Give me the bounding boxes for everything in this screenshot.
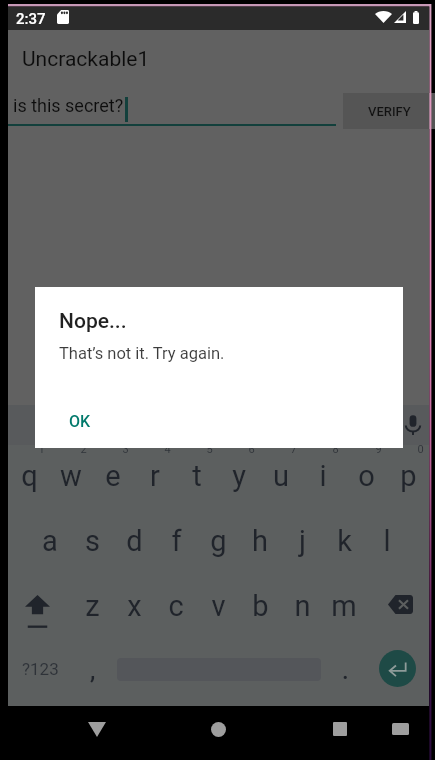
staticText: 2 — [80, 443, 87, 456]
button[interactable]: s — [71, 515, 113, 567]
button[interactable]: r — [134, 450, 176, 502]
button[interactable]: m — [323, 580, 365, 632]
staticText: 9 — [375, 443, 382, 456]
staticText: . — [342, 657, 349, 685]
staticText: i — [319, 459, 327, 493]
staticText: d — [126, 524, 143, 558]
button[interactable]: Recent apps — [320, 709, 360, 749]
staticText: 0 — [417, 443, 424, 456]
staticText: l — [383, 524, 391, 558]
button[interactable]: p — [387, 450, 429, 502]
button[interactable]: o — [345, 450, 387, 502]
button[interactable]: i — [302, 450, 344, 502]
button[interactable]: OK — [58, 405, 102, 437]
staticText: v — [211, 589, 226, 623]
button[interactable]: Switch keyboard — [383, 712, 417, 746]
other: Voice input — [403, 413, 423, 436]
button[interactable]: Home — [198, 709, 238, 749]
button[interactable]: Shift — [25, 595, 50, 628]
button[interactable]: l — [366, 515, 408, 567]
staticText: q — [21, 459, 38, 493]
button[interactable]: v — [197, 580, 239, 632]
staticText: ?123 — [22, 659, 59, 679]
button[interactable]: c — [155, 580, 197, 632]
button[interactable]: j — [281, 515, 323, 567]
staticText: y — [232, 459, 246, 493]
button[interactable]: ?123 — [14, 649, 66, 689]
button[interactable]: k — [323, 515, 365, 567]
staticText: o — [358, 459, 375, 493]
staticText: , — [90, 657, 96, 685]
staticText: f — [171, 524, 182, 558]
staticText: j — [299, 524, 306, 558]
button[interactable]: u — [260, 450, 302, 502]
button[interactable]: Backspace — [388, 595, 413, 614]
staticText: c — [168, 589, 184, 623]
button[interactable]: f — [155, 515, 197, 567]
staticText: 8 — [332, 443, 339, 456]
button[interactable]: x — [113, 580, 155, 632]
button[interactable]: n — [281, 580, 323, 632]
staticText: That’s not it. Try again. — [59, 344, 225, 363]
button[interactable]: . — [323, 651, 368, 691]
button[interactable]: t — [176, 450, 218, 502]
staticText: u — [273, 459, 289, 493]
staticText: Nope... — [59, 309, 127, 334]
button[interactable]: y — [218, 450, 260, 502]
staticText: s — [85, 524, 100, 558]
button[interactable]: b — [239, 580, 281, 632]
staticText: h — [252, 524, 268, 558]
staticText: 5 — [206, 443, 213, 456]
staticText: w — [60, 459, 82, 493]
staticText: 3 — [122, 443, 129, 456]
staticText: t — [192, 459, 202, 493]
button[interactable]: g — [197, 515, 239, 567]
staticText: r — [150, 459, 160, 493]
staticText: 6 — [248, 443, 255, 456]
button[interactable]: h — [239, 515, 281, 567]
button[interactable]: VERIFY — [343, 93, 435, 129]
staticText: Uncrackable1 — [22, 47, 150, 72]
staticText: n — [294, 589, 311, 623]
staticText: OK — [69, 412, 91, 431]
staticText: x — [127, 589, 142, 623]
button[interactable]: q — [8, 450, 50, 502]
button[interactable]: e — [92, 450, 134, 502]
staticText: m — [331, 589, 357, 623]
staticText: g — [210, 524, 227, 558]
staticText: is this secret? — [13, 95, 124, 116]
button[interactable]: w — [50, 450, 92, 502]
button[interactable]: Enter — [379, 650, 416, 687]
staticText: e — [105, 459, 121, 493]
button[interactable]: a — [29, 515, 71, 567]
staticText: 2:37 — [16, 10, 46, 28]
staticText: b — [252, 589, 269, 623]
staticText: z — [85, 589, 100, 623]
staticText: p — [400, 459, 417, 493]
button[interactable]: z — [71, 580, 113, 632]
staticText: VERIFY — [368, 104, 411, 119]
button[interactable]: , — [70, 651, 115, 691]
button[interactable]: Back — [77, 709, 117, 749]
button[interactable]: d — [113, 515, 155, 567]
staticText: a — [42, 524, 58, 558]
staticText: k — [337, 524, 352, 558]
staticText: 1 — [38, 443, 45, 456]
staticText: 7 — [290, 443, 297, 456]
staticText: 4 — [164, 443, 171, 456]
